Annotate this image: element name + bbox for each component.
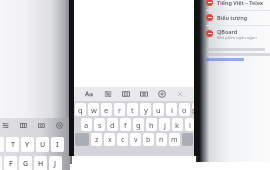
staticText: v — [134, 135, 138, 145]
button[interactable]: w — [88, 103, 99, 116]
staticText: Tiếng Việt – Telex — [217, 0, 264, 6]
staticText: o — [182, 105, 187, 115]
button[interactable]: y — [140, 103, 151, 116]
staticText: g — [136, 120, 141, 130]
button[interactable]: p — [192, 103, 194, 116]
button[interactable]: Y — [21, 137, 34, 152]
button[interactable]: z — [91, 133, 102, 146]
button[interactable]: Keyboard — [117, 87, 135, 101]
staticText: J — [54, 159, 57, 169]
staticText: l — [189, 120, 191, 130]
staticText: t — [131, 105, 134, 115]
staticText: c — [121, 135, 125, 145]
button[interactable]: Sticker — [153, 87, 171, 101]
button[interactable]: j — [159, 118, 170, 131]
button[interactable]: o — [179, 103, 190, 116]
button[interactable]: Camera — [32, 118, 50, 133]
staticText: U — [40, 140, 46, 150]
staticText: x — [108, 135, 112, 145]
staticText: j — [164, 120, 166, 130]
staticText: i — [171, 105, 173, 115]
staticText: d — [110, 120, 115, 130]
button[interactable]: Remove Tiếng Việt – Telex — [206, 0, 270, 8]
button[interactable]: q — [75, 103, 86, 116]
button[interactable]: c — [117, 133, 128, 146]
button[interactable]: Close — [171, 87, 189, 101]
button[interactable]: List — [0, 118, 14, 133]
button[interactable]: Remove QBoard — [206, 30, 213, 37]
button[interactable]: u — [153, 103, 164, 116]
button[interactable]: Shift — [75, 133, 89, 146]
button[interactable]: i — [166, 103, 177, 116]
staticText: m — [171, 135, 178, 145]
staticText: r — [118, 105, 122, 115]
staticText: Y — [25, 140, 30, 150]
staticText: n — [159, 135, 164, 145]
button[interactable]: Backspace — [182, 133, 193, 146]
staticText: a — [84, 120, 89, 130]
button[interactable]: List — [98, 87, 117, 101]
button[interactable]: Remove Biểu tượng — [206, 11, 270, 23]
button[interactable]: r — [114, 103, 125, 116]
button[interactable]: v — [130, 133, 141, 146]
button[interactable]: a — [81, 118, 92, 131]
button[interactable]: e — [101, 103, 112, 116]
button[interactable]: H — [34, 156, 47, 170]
button[interactable]: l — [185, 118, 194, 131]
staticText: T — [11, 140, 15, 150]
staticText: F — [9, 159, 13, 169]
staticText: k — [175, 120, 180, 130]
button[interactable]: F — [4, 156, 17, 170]
button[interactable]: b — [143, 133, 154, 146]
button[interactable]: g — [133, 118, 144, 131]
button[interactable]: D — [0, 156, 2, 170]
staticText: z — [95, 135, 99, 145]
staticText: h — [149, 120, 154, 130]
button[interactable]: f — [120, 118, 131, 131]
staticText: G — [23, 159, 29, 169]
button[interactable]: Format — [79, 87, 98, 101]
button[interactable]: Sticker — [50, 118, 68, 133]
button[interactable]: x — [104, 133, 115, 146]
button[interactable]: k — [172, 118, 183, 131]
staticText: Biểu tượng — [217, 14, 248, 21]
button[interactable]: Remove Biểu tượng — [206, 14, 213, 21]
button[interactable]: Keyboard — [14, 118, 32, 133]
staticText: u — [156, 105, 161, 115]
staticText: QBoard — [217, 28, 238, 35]
button[interactable]: Remove QBoard — [206, 26, 270, 41]
button[interactable]: I — [51, 137, 64, 152]
staticText: w — [91, 105, 97, 115]
button[interactable]: s — [94, 118, 105, 131]
staticText: y — [144, 105, 148, 115]
staticText: f — [124, 120, 127, 130]
button[interactable]: t — [127, 103, 138, 116]
button[interactable]: n — [156, 133, 167, 146]
button[interactable]: J — [49, 156, 62, 170]
staticText: H — [38, 159, 44, 169]
button[interactable]: Remove Tiếng Việt – Telex — [206, 0, 213, 6]
staticText: p — [192, 105, 194, 115]
staticText: b — [146, 135, 151, 145]
staticText: q — [78, 105, 83, 115]
button[interactable]: h — [146, 118, 157, 131]
staticText: s — [98, 120, 102, 130]
button[interactable]: Camera — [135, 87, 153, 101]
staticText: Bàn phím ngắn ngọn — [217, 35, 257, 40]
button[interactable]: m — [169, 133, 180, 146]
button[interactable]: G — [19, 156, 32, 170]
staticText: e — [104, 105, 109, 115]
button[interactable]: R — [0, 137, 4, 152]
button[interactable]: U — [36, 137, 49, 152]
staticText: I — [56, 140, 59, 150]
button[interactable]: T — [6, 137, 19, 152]
button[interactable]: d — [107, 118, 118, 131]
